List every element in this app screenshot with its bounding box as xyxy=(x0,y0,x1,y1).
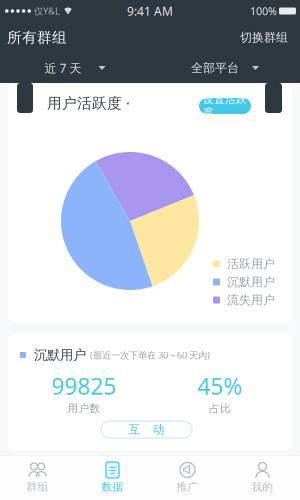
staticText: 仅Y&L xyxy=(31,5,60,17)
staticText: 我的 xyxy=(251,480,273,493)
staticText: 沉默用户 xyxy=(26,347,86,363)
button[interactable]: 切换群组 xyxy=(240,30,288,45)
staticText: 所有群组 xyxy=(7,28,67,46)
staticText: 全部平台 xyxy=(191,61,239,75)
staticText: 近 7 天 xyxy=(44,60,81,76)
staticText: 45% xyxy=(197,371,242,401)
staticText: 群组 xyxy=(26,480,48,493)
button[interactable]: 设置活跃度 xyxy=(199,98,251,114)
staticText: 切换群组 xyxy=(240,30,288,45)
staticText: 互 动 xyxy=(128,422,164,437)
staticText: 沉默用户 xyxy=(227,275,275,289)
button[interactable]: 数据 xyxy=(75,455,150,499)
staticText: 数据 xyxy=(101,480,123,493)
staticText: 100% xyxy=(250,4,277,18)
button[interactable]: 全部平台 xyxy=(150,53,300,83)
button[interactable]: 推广 xyxy=(150,455,225,499)
staticText: 用户数 xyxy=(67,402,100,415)
button[interactable]: 我的 xyxy=(225,455,300,499)
staticText: 设置活跃度 xyxy=(203,93,247,119)
staticText: 用户活跃度 · xyxy=(47,93,130,112)
staticText: 推广 xyxy=(176,480,198,493)
button[interactable]: 群组 xyxy=(0,455,75,499)
staticText: 流失用户 xyxy=(227,293,275,307)
staticText: 占比 xyxy=(209,402,231,415)
staticText: 99825 xyxy=(51,371,116,401)
button[interactable]: 互 动 xyxy=(101,421,192,438)
staticText: 9:41 AM xyxy=(127,3,173,19)
button[interactable]: 近 7 天 xyxy=(0,53,150,83)
staticText: (最近一次下单在 30 ~ 60 天内) xyxy=(86,349,210,361)
staticText: 活跃用户 xyxy=(227,257,275,271)
